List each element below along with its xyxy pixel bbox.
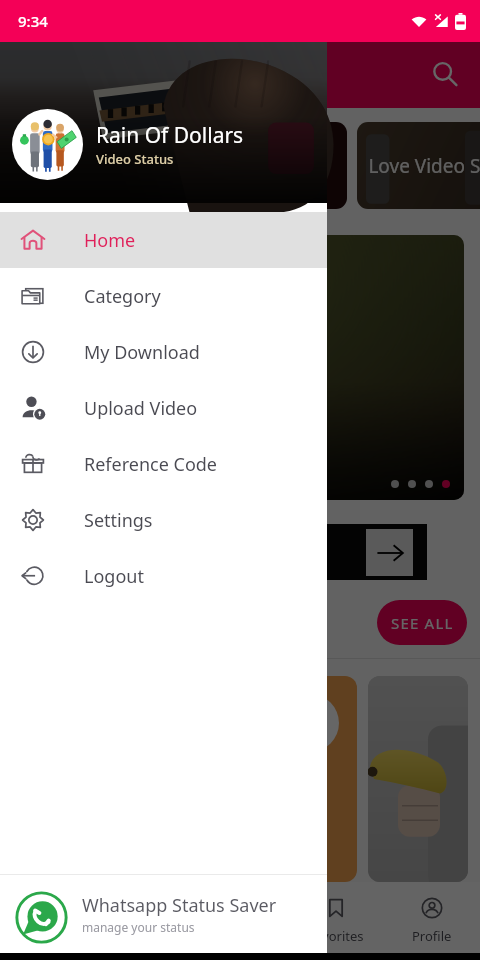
button[interactable] [0,676,357,882]
staticText: Category [84,284,161,309]
staticText: Reference Code [84,452,218,477]
button[interactable]: Love Video Status [357,122,480,209]
button[interactable]: Category [0,268,327,324]
staticText: SEE ALL [391,613,454,633]
button[interactable]: Whatsapp Status Saver [0,875,327,953]
staticText: Favorites [308,927,364,945]
staticText: Category [116,927,172,945]
button[interactable]: Profile [384,882,480,953]
button[interactable]: Download [192,882,288,953]
staticText: Home [30,927,67,945]
button[interactable]: Category [96,882,192,953]
button[interactable]: My Download [0,324,327,380]
button[interactable] [16,235,464,500]
button[interactable]: Reference Code [0,436,327,492]
button[interactable]: Settings [0,492,327,548]
staticText: manage your status [82,919,195,935]
staticText: Video Status [96,150,174,168]
button[interactable] [0,122,347,209]
button[interactable]: SEE ALL [377,600,467,645]
staticText: 9:34 [18,11,48,31]
staticText: Rain Of Dollars [96,121,244,150]
staticText: Home [84,228,136,253]
button[interactable]: Home [0,212,327,268]
button[interactable] [368,676,468,882]
staticText: Settings [84,508,153,533]
button[interactable]: Favorites [288,882,384,953]
staticText: Logout [84,564,144,589]
button[interactable] [0,524,427,580]
staticText: Profile [412,927,452,945]
button[interactable]: Upload Video [0,380,327,436]
staticText: My Download [84,340,200,365]
staticText: Whatsapp Status Saver [82,893,277,918]
staticText: Love Video Status [368,153,480,179]
staticText: Upload Video [84,396,198,421]
button[interactable]: Logout [0,548,327,604]
button[interactable]: Search [422,51,468,97]
button[interactable]: Home [0,882,96,953]
